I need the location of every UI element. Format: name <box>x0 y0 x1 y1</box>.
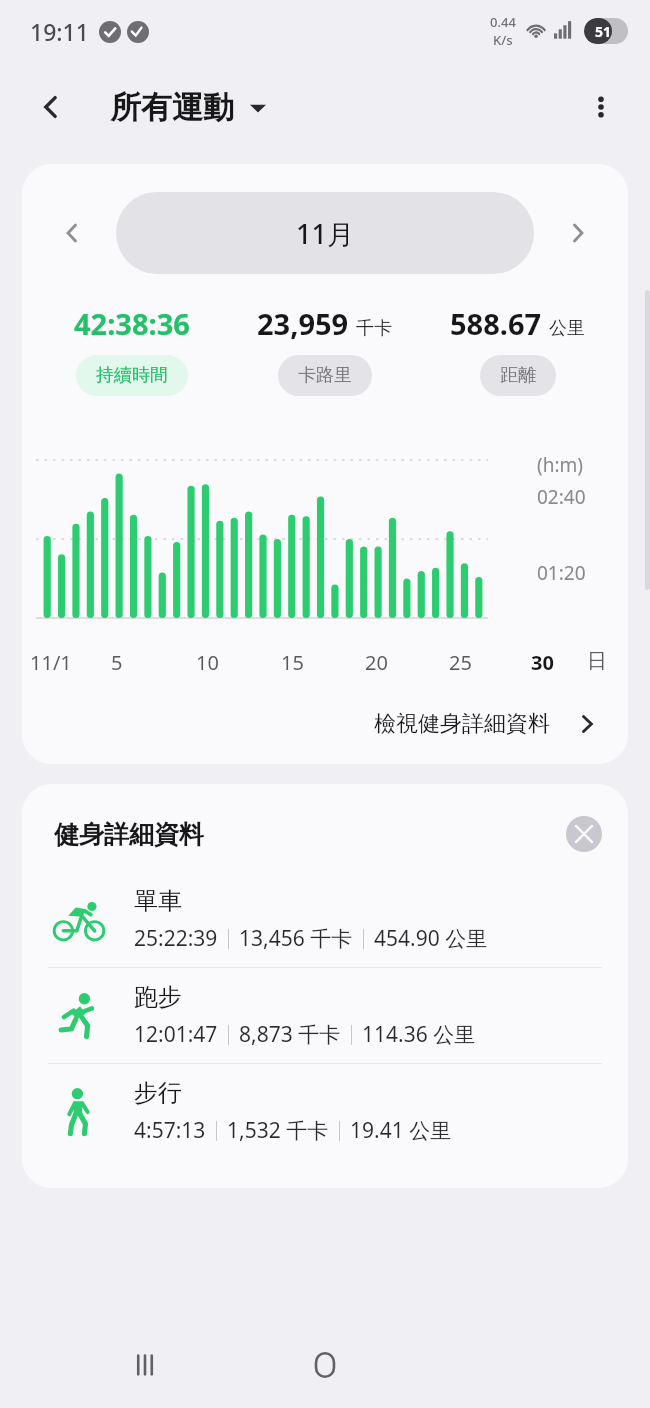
button[interactable]: 步行 <box>22 1064 628 1159</box>
button[interactable]: 588.67 <box>421 304 614 396</box>
staticText: 千卡 <box>356 317 392 340</box>
staticText: 4:57:13 <box>134 1116 206 1145</box>
staticText: 持續時間 <box>96 364 168 387</box>
button[interactable]: Previous month <box>46 207 98 259</box>
staticText: 19.41 公里 <box>350 1116 452 1145</box>
button[interactable]: More options <box>576 82 626 132</box>
staticText: 25:22:39 <box>134 924 218 953</box>
staticText: 42:38:36 <box>74 304 190 343</box>
staticText: 588.67 <box>450 304 542 343</box>
button[interactable]: Home <box>297 1337 353 1393</box>
staticText: 11/1 <box>30 649 72 676</box>
staticText: 跑步 <box>134 982 182 1012</box>
button[interactable]: 23,959 <box>228 304 421 396</box>
staticText: 19:11 <box>30 16 89 47</box>
staticText: 步行 <box>134 1078 182 1108</box>
button[interactable]: 11月 <box>116 192 534 274</box>
staticText: 單車 <box>134 886 182 916</box>
staticText: 01:20 <box>537 560 586 586</box>
staticText: 0.44 <box>490 13 516 31</box>
button[interactable]: 42:38:36 <box>36 304 228 396</box>
staticText: 健身詳細資料 <box>54 819 204 850</box>
button[interactable]: Close <box>566 816 602 852</box>
button[interactable]: Recent apps <box>117 1337 173 1393</box>
staticText: 所有運動 <box>110 88 234 127</box>
staticText: 25 <box>449 649 472 676</box>
button[interactable]: 單車 <box>22 872 628 967</box>
staticText: 日 <box>587 649 607 674</box>
staticText: 114.36 公里 <box>362 1020 476 1049</box>
staticText: 20 <box>365 649 388 676</box>
staticText: 11月 <box>296 215 354 252</box>
staticText: 8,873 千卡 <box>239 1020 341 1049</box>
button[interactable]: Next month <box>552 207 604 259</box>
staticText: 5 <box>111 649 123 676</box>
staticText: 10 <box>196 649 219 676</box>
staticText: 12:01:47 <box>134 1020 218 1049</box>
staticText: K/s <box>493 31 513 49</box>
staticText: 卡路里 <box>298 364 352 387</box>
staticText: 30 <box>531 649 554 676</box>
staticText: 454.90 公里 <box>374 924 488 953</box>
staticText: 23,959 <box>257 304 349 343</box>
button[interactable]: 檢視健身詳細資料 <box>22 698 628 764</box>
staticText: 距離 <box>500 364 536 387</box>
staticText: 1,532 千卡 <box>227 1116 329 1145</box>
staticText: 公里 <box>549 317 585 340</box>
button[interactable]: 跑步 <box>22 968 628 1063</box>
staticText: 13,456 千卡 <box>239 924 353 953</box>
staticText: 檢視健身詳細資料 <box>374 710 550 738</box>
staticText: (h:m) <box>537 452 583 478</box>
staticText: 02:40 <box>537 484 586 510</box>
button[interactable]: 所有運動 <box>110 88 266 127</box>
staticText: 51 <box>595 22 612 41</box>
button[interactable]: Back <box>26 82 76 132</box>
staticText: 15 <box>281 649 304 676</box>
